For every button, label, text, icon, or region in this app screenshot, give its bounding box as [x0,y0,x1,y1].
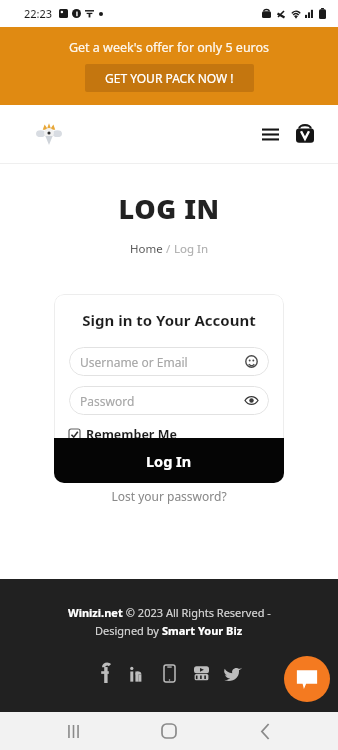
staticText: Log In [146,451,192,471]
button[interactable]: Get a week's offer for only 5 euros [0,27,338,105]
staticText: / [163,241,174,257]
staticText: Password [80,393,245,409]
staticText: Sign in to Your Account [69,310,269,330]
staticText: LOG IN [0,190,338,227]
button[interactable]: Back [242,712,288,750]
button[interactable]: GET YOUR PACK NOW ! [85,64,254,92]
button[interactable]: Password [69,386,269,415]
button[interactable]: Home [146,712,192,750]
staticText: Designed by [95,623,162,638]
button[interactable]: Cart [292,121,318,147]
staticText: Winizi.net [68,605,123,620]
button[interactable]: Recents [50,712,96,750]
staticText: Get a week's offer for only 5 euros [0,39,338,56]
button[interactable]: Smart Your Biz [162,623,243,638]
button[interactable]: Lost your password? [0,488,338,504]
button[interactable]: Twitter [217,660,249,686]
button[interactable]: Log In [54,438,284,483]
button[interactable]: Home [130,241,163,257]
staticText: Remember Me [86,426,177,443]
button[interactable]: Open chat [284,656,330,702]
button[interactable]: LinkedIn [121,660,153,686]
button[interactable]: YouTube [185,660,217,686]
button[interactable]: Mobile [153,660,185,686]
button[interactable]: Remember Me [69,426,177,443]
staticText: © 2023 All Rights Reserved - [123,605,271,620]
staticText: Log In [174,241,209,257]
staticText: GET YOUR PACK NOW ! [105,70,234,86]
button[interactable]: Facebook [89,660,121,686]
button[interactable]: Menu [258,122,282,146]
staticText: 22:23 [24,6,53,21]
button[interactable]: Winizi home [36,121,62,147]
staticText: Username or Email [80,354,245,370]
button[interactable]: Username or Email [69,347,269,376]
